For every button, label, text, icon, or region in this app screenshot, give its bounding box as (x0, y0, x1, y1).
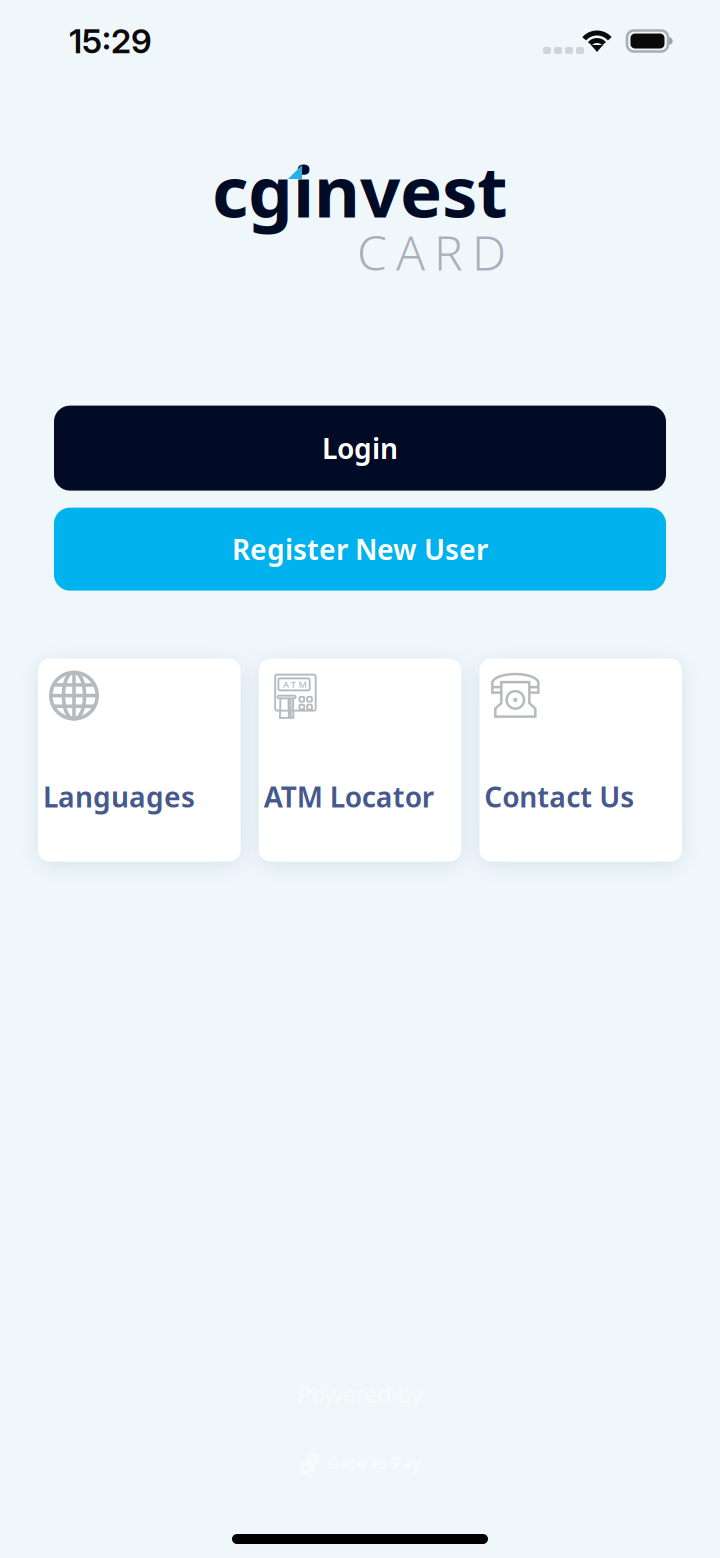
staticText: Register New User (232, 530, 488, 568)
button[interactable]: Register New User (54, 508, 666, 591)
button[interactable]: Login (54, 406, 666, 491)
button[interactable]: Contact Us (479, 659, 682, 862)
button[interactable]: ATM (259, 659, 461, 862)
staticText: 15:29 (69, 21, 152, 61)
staticText: Login (322, 429, 398, 467)
staticText: CARD (357, 219, 506, 285)
staticText: cginvest (212, 142, 508, 238)
button[interactable]: Languages (38, 659, 241, 862)
staticText: ATM (283, 678, 306, 690)
staticText: ATM Locator (264, 777, 434, 816)
staticText: Contact Us (484, 777, 634, 816)
staticText: Languages (43, 777, 195, 816)
